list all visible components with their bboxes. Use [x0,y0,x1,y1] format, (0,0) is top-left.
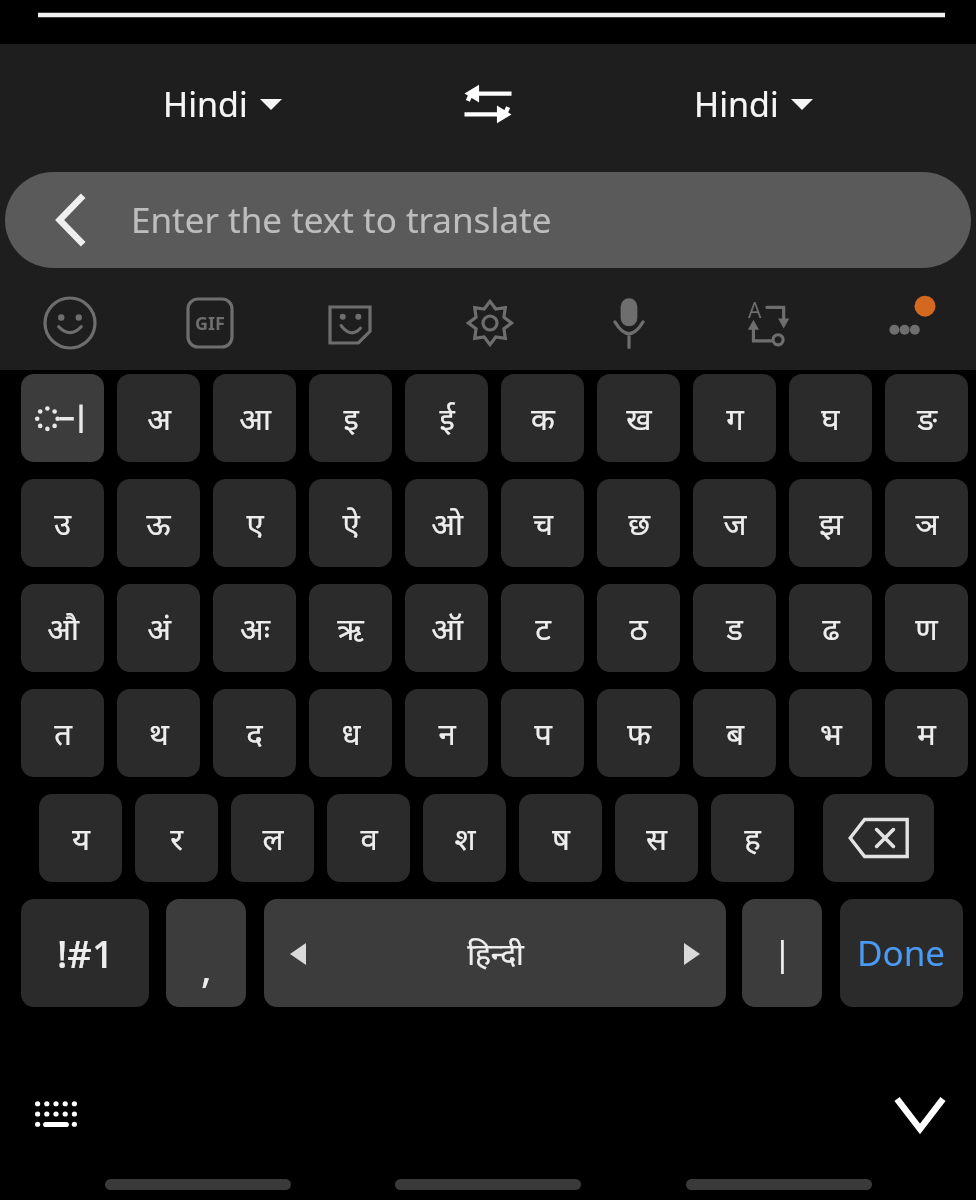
staticText: ध [341,712,361,754]
button[interactable]: Navigation [686,1179,872,1190]
button[interactable]: ऐ [309,479,392,567]
button[interactable]: Hide keyboard [888,1090,952,1138]
button[interactable]: च [501,479,584,567]
button[interactable]: ष [519,794,602,882]
button[interactable]: ल [231,794,314,882]
staticText: द [246,712,263,754]
button[interactable]: Switch keyboard [24,1090,88,1138]
button[interactable]: द [213,689,296,777]
button[interactable]: ध [309,689,392,777]
button[interactable]: ढ [789,584,872,672]
button[interactable]: ज [693,479,776,567]
staticText: इ [343,397,359,439]
button[interactable]: झ [789,479,872,567]
staticText: उ [54,502,71,544]
staticText: ब [726,712,744,754]
button[interactable]: Space, Hindi [264,899,726,1007]
button[interactable]: !#1 [21,899,149,1007]
button[interactable]: ह [711,794,794,882]
button[interactable]: ख [597,374,680,462]
button[interactable]: श [423,794,506,882]
staticText: Hindi [163,81,248,127]
button[interactable]: उ [21,479,104,567]
staticText: व [360,817,378,859]
button[interactable]: Backspace [823,794,934,882]
staticText: ढ [822,607,840,649]
button[interactable]: , [166,899,246,1007]
button[interactable]: ऋ [309,584,392,672]
button[interactable]: GIF [140,276,280,370]
staticText: अः [240,607,270,649]
button[interactable]: Hindi [684,75,823,133]
button[interactable]: र [135,794,218,882]
staticText: Enter the text to translate [131,196,552,244]
button[interactable]: अं [117,584,200,672]
staticText: त [54,712,72,754]
staticText: ऊ [146,502,171,544]
staticText: झ [819,502,843,544]
button[interactable]: Swap languages [445,61,531,147]
staticText: ख [626,397,652,439]
button[interactable]: Hindi [153,75,292,133]
button[interactable]: Enter the text to translate [5,172,971,268]
staticText: ड [726,607,743,649]
staticText: ञ [915,502,939,544]
staticText: ङ [917,397,937,439]
button[interactable]: ड [693,584,776,672]
button[interactable]: अ [117,374,200,462]
button[interactable]: Voice input [559,276,698,370]
button[interactable]: छ [597,479,680,567]
button[interactable]: ङ [885,374,968,462]
staticText: अ [147,397,171,439]
button[interactable]: घ [789,374,872,462]
staticText: !#1 [57,927,114,979]
button[interactable]: Done [840,899,963,1007]
button[interactable]: ब [693,689,776,777]
staticText: ल [262,817,284,859]
button[interactable]: थ [117,689,200,777]
staticText: च [533,502,553,544]
button[interactable]: त [21,689,104,777]
staticText: हिन्दी [467,933,524,974]
button[interactable]: ए [213,479,296,567]
button[interactable]: अः [213,584,296,672]
button[interactable]: Navigation [105,1179,291,1190]
staticText: ष [552,817,570,859]
button[interactable] [21,374,104,462]
button[interactable]: भ [789,689,872,777]
staticText: भ [820,712,842,754]
button[interactable]: ऑ [405,584,488,672]
button[interactable]: Sticker [280,276,420,370]
button[interactable]: आ [213,374,296,462]
button[interactable]: ण [885,584,968,672]
button[interactable]: More options [837,276,976,370]
staticText: आ [239,397,271,439]
button[interactable]: ग [693,374,776,462]
staticText: | [773,930,792,976]
button[interactable]: औ [21,584,104,672]
staticText: म [917,712,936,754]
button[interactable]: प [501,689,584,777]
button[interactable]: ट [501,584,584,672]
button[interactable]: स [615,794,698,882]
button[interactable]: | [742,899,822,1007]
button[interactable]: Settings [420,276,559,370]
button[interactable]: Navigation [395,1179,581,1190]
button[interactable]: क [501,374,584,462]
button[interactable]: ञ [885,479,968,567]
button[interactable]: म [885,689,968,777]
staticText: ज [723,502,747,544]
button[interactable]: ठ [597,584,680,672]
staticText: ग [726,397,744,439]
button[interactable]: ई [405,374,488,462]
button[interactable]: व [327,794,410,882]
button[interactable]: ओ [405,479,488,567]
button[interactable]: न [405,689,488,777]
staticText: Done [857,929,946,977]
button[interactable]: इ [309,374,392,462]
button[interactable]: Emoji [0,276,140,370]
button[interactable]: य [39,794,122,882]
button[interactable]: Translate [698,276,837,370]
button[interactable]: फ [597,689,680,777]
button[interactable]: ऊ [117,479,200,567]
